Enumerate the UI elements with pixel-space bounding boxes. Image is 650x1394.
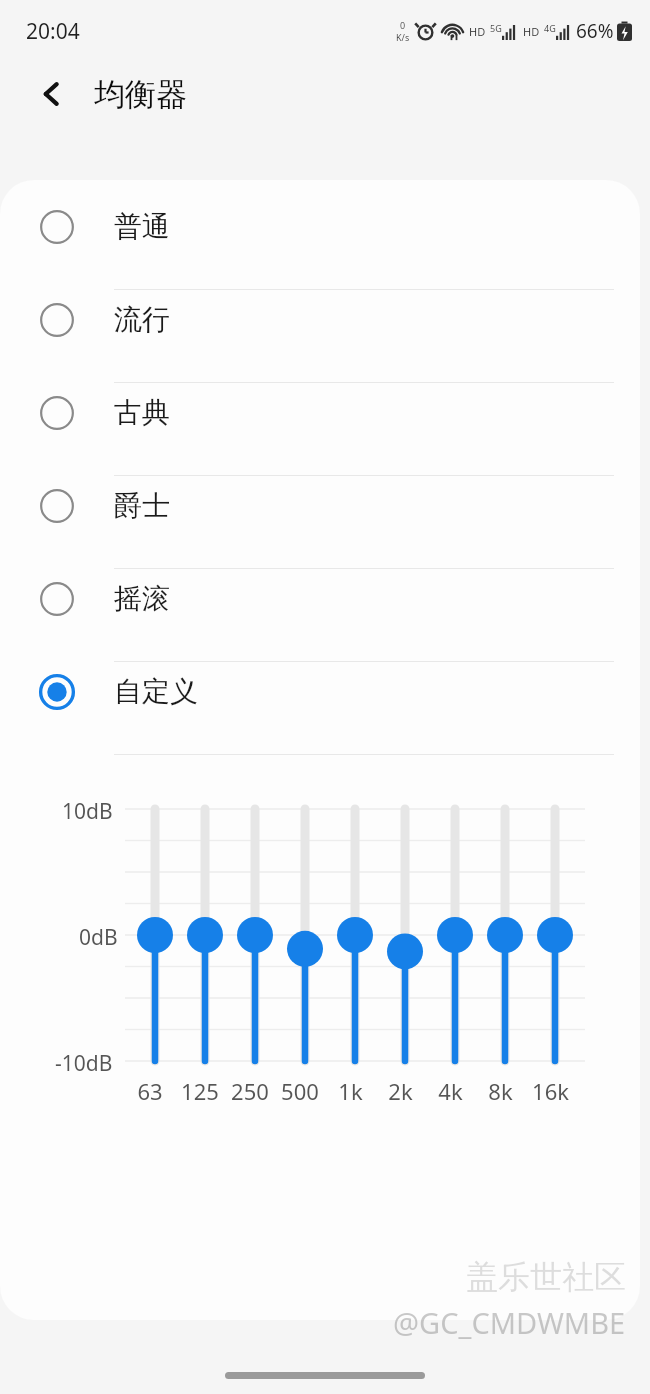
staticText: 8k <box>488 1076 513 1106</box>
staticText: HD <box>469 24 486 39</box>
staticText: 自定义 <box>114 674 198 709</box>
staticText: 4G <box>544 22 556 34</box>
button[interactable]: 普通 <box>0 180 640 273</box>
staticText: HD <box>523 24 540 39</box>
staticText: 古典 <box>114 395 170 430</box>
staticText: 10dB <box>62 797 113 826</box>
button[interactable]: 古典 <box>0 366 640 459</box>
staticText: 0dB <box>79 923 118 952</box>
staticText: 均衡器 <box>94 75 187 114</box>
staticText: 66% <box>576 18 614 44</box>
button[interactable]: Back <box>26 68 78 120</box>
staticText: 125 <box>181 1076 219 1106</box>
staticText: 16k <box>532 1076 569 1106</box>
staticText: @GC_CMDWMBE <box>393 1303 626 1342</box>
button[interactable]: 摇滚 <box>0 552 640 645</box>
button[interactable]: 自定义 <box>0 645 640 738</box>
staticText: 63 <box>137 1076 163 1106</box>
staticText: 摇滚 <box>114 581 170 616</box>
staticText: K/s <box>396 31 410 43</box>
staticText: 500 <box>281 1076 319 1106</box>
staticText: 5G <box>490 22 502 34</box>
staticText: 盖乐世社区 <box>466 1257 626 1297</box>
staticText: 爵士 <box>114 488 170 523</box>
staticText: 流行 <box>114 302 170 337</box>
staticText: 普通 <box>114 209 170 244</box>
staticText: 250 <box>231 1076 269 1106</box>
button[interactable]: 流行 <box>0 273 640 366</box>
button[interactable]: 爵士 <box>0 459 640 552</box>
staticText: 0 <box>400 19 406 31</box>
staticText: 2k <box>388 1076 413 1106</box>
staticText: 1k <box>338 1076 363 1106</box>
staticText: -10dB <box>55 1049 113 1078</box>
staticText: 20:04 <box>26 17 80 46</box>
staticText: 4k <box>438 1076 463 1106</box>
